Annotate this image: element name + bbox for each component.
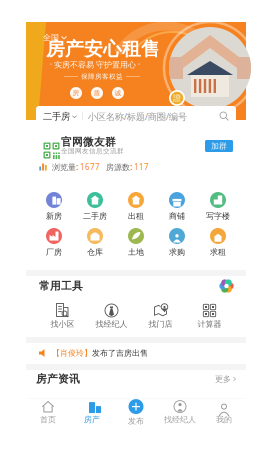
staticText: 求购: [169, 247, 185, 257]
button[interactable]: 求购: [156, 228, 197, 256]
button[interactable]: 【肖俊玲】: [26, 343, 246, 363]
staticText: 发布了吉房出售: [92, 348, 148, 358]
button[interactable]: 找门店: [136, 303, 185, 328]
staticText: 发布: [128, 416, 144, 426]
staticText: · 实房不容易 守护置用心 ·: [50, 59, 140, 70]
staticText: 小区名称/标题/商圈/编号: [88, 110, 187, 123]
button[interactable]: 首页: [26, 398, 70, 426]
staticText: 房产: [84, 415, 100, 424]
button[interactable]: 二手房: [36, 106, 236, 127]
button[interactable]: 找经纪人: [158, 398, 202, 426]
button[interactable]: 仓库: [74, 228, 115, 256]
staticText: 求租: [210, 247, 226, 257]
staticText: 土地: [128, 247, 144, 257]
staticText: 我的: [216, 415, 232, 424]
button[interactable]: 房产: [70, 398, 114, 426]
staticText: 常用工具: [39, 279, 83, 292]
staticText: 房产安心租售: [46, 37, 160, 60]
button[interactable]: 计算器: [185, 303, 234, 328]
staticText: 加群: [211, 141, 227, 151]
staticText: 盾: [93, 89, 100, 97]
staticText: 首页: [40, 415, 56, 424]
button[interactable]: 写字楼: [197, 192, 238, 220]
staticText: 房产资讯: [36, 372, 80, 385]
staticText: 找经纪人: [164, 415, 196, 424]
button[interactable]: 厂房: [33, 228, 74, 256]
staticText: 浏览量:: [52, 162, 78, 172]
staticText: 找经纪人: [95, 319, 127, 329]
staticText: 房: [72, 89, 79, 97]
button[interactable]: 找小区: [38, 303, 87, 328]
staticText: 厂房: [46, 247, 62, 257]
button[interactable]: 二手房: [74, 192, 115, 220]
staticText: 诚: [114, 89, 121, 97]
staticText: 商铺: [169, 211, 185, 221]
button[interactable]: 全国: [43, 33, 67, 42]
button[interactable]: 土地: [115, 228, 156, 256]
staticText: 官网微友群: [61, 135, 116, 148]
staticText: 找门店: [148, 319, 172, 329]
button[interactable]: 更多: [215, 374, 236, 384]
staticText: 二手房: [43, 111, 70, 122]
button[interactable]: 求租: [197, 228, 238, 256]
staticText: 證: [173, 93, 181, 103]
staticText: 仓库: [87, 247, 103, 257]
button[interactable]: 发布: [114, 398, 158, 426]
button[interactable]: 商铺: [156, 192, 197, 220]
staticText: 新房: [46, 211, 62, 221]
button[interactable]: 新房: [33, 192, 74, 220]
staticText: 找小区: [50, 319, 74, 329]
staticText: 【肖俊玲】: [52, 348, 92, 358]
button[interactable]: 找经纪人: [87, 303, 136, 328]
staticText: 房源数:: [106, 162, 132, 172]
staticText: 写字楼: [206, 211, 230, 221]
button[interactable]: 出租: [115, 192, 156, 220]
button[interactable]: 我的: [202, 398, 246, 426]
staticText: 二手房: [83, 211, 107, 221]
staticText: 出租: [128, 211, 144, 221]
staticText: 全国网友信息交流群: [61, 147, 124, 155]
staticText: 1677: [80, 162, 100, 172]
staticText: 保障房客权益: [81, 72, 123, 81]
button[interactable]: 官网微友群: [26, 134, 246, 158]
staticText: 计算器: [197, 319, 221, 329]
staticText: 117: [134, 162, 149, 172]
staticText: 全国: [43, 33, 59, 42]
staticText: 更多: [215, 374, 231, 384]
